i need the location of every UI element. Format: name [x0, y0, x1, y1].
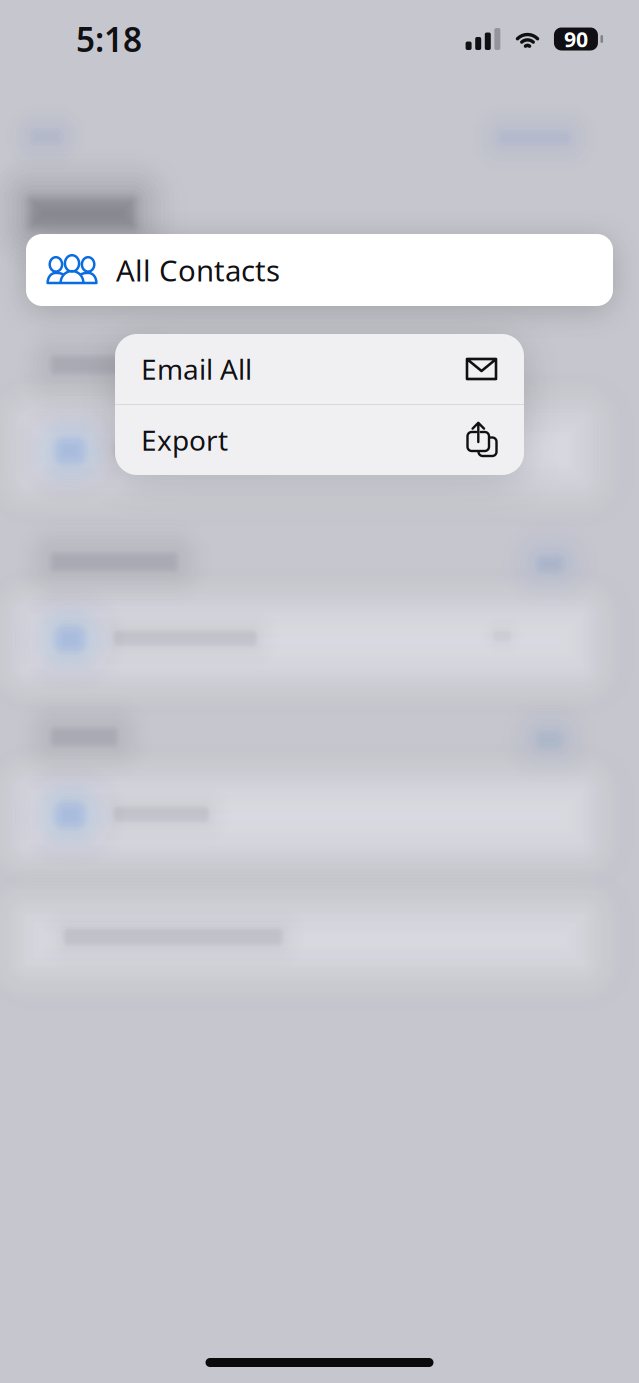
- button[interactable]: Email All: [115, 334, 524, 404]
- button[interactable]: Export: [115, 405, 524, 475]
- staticText: 90: [564, 25, 588, 53]
- button[interactable]: All Contacts: [26, 234, 613, 306]
- staticText: 5:18: [76, 17, 142, 61]
- staticText: Email All: [141, 350, 252, 388]
- staticText: All Contacts: [116, 250, 280, 289]
- staticText: Export: [141, 421, 228, 459]
